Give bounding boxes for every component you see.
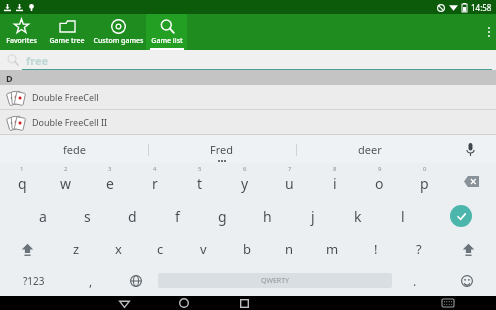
button[interactable]: g xyxy=(200,199,245,233)
staticText: y xyxy=(241,174,249,193)
button[interactable]: Enter xyxy=(425,199,496,233)
staticText: deer xyxy=(358,142,382,157)
button[interactable]: z xyxy=(55,233,97,265)
staticText: t xyxy=(197,174,203,193)
button[interactable]: d xyxy=(110,199,155,233)
staticText: r xyxy=(152,174,158,193)
staticText: 8 xyxy=(333,165,337,173)
button[interactable]: Game tree xyxy=(43,14,90,50)
staticText: 14:58 xyxy=(471,2,492,13)
button[interactable]: n xyxy=(268,233,311,265)
staticText: d xyxy=(128,207,137,226)
staticText: D xyxy=(6,72,13,84)
staticText: 1 xyxy=(20,165,24,173)
staticText: h xyxy=(263,207,272,226)
button[interactable]: s xyxy=(65,199,110,233)
staticText: g xyxy=(218,207,227,226)
button[interactable]: 1 xyxy=(0,163,44,199)
button[interactable]: 5 xyxy=(177,163,222,199)
button[interactable]: Voice input xyxy=(444,136,496,163)
staticText: p xyxy=(420,174,429,193)
button[interactable]: QWERTY xyxy=(158,273,392,288)
staticText: x xyxy=(115,240,122,258)
button[interactable]: More options xyxy=(488,27,490,37)
staticText: ! xyxy=(374,240,378,258)
staticText: e xyxy=(106,174,114,193)
button[interactable]: Shift xyxy=(440,233,496,265)
staticText: , xyxy=(89,273,93,289)
staticText: QWERTY xyxy=(261,276,290,286)
button[interactable]: ?123 xyxy=(0,265,68,296)
staticText: 2 xyxy=(64,165,68,173)
staticText: Game tree xyxy=(49,36,85,46)
staticText: Fred xyxy=(210,142,234,157)
staticText: 5 xyxy=(198,165,202,173)
button[interactable]: Backspace xyxy=(447,163,496,199)
staticText: fede xyxy=(63,142,86,157)
button[interactable]: Home xyxy=(154,296,214,310)
button[interactable]: deer xyxy=(296,136,444,163)
staticText: n xyxy=(285,240,294,258)
staticText: 4 xyxy=(153,165,157,173)
button[interactable]: h xyxy=(245,199,290,233)
button[interactable]: Double FreeCell II xyxy=(0,110,496,134)
button[interactable]: x xyxy=(97,233,139,265)
button[interactable]: Hide keyboard xyxy=(418,296,478,310)
button[interactable]: Double FreeCell xyxy=(0,85,496,109)
staticText: u xyxy=(285,174,294,193)
staticText: m xyxy=(326,240,339,258)
button[interactable]: Custom games xyxy=(90,14,146,50)
staticText: 0 xyxy=(423,165,427,173)
button[interactable]: Fred xyxy=(148,136,296,163)
staticText: c xyxy=(157,240,164,258)
button[interactable]: 0 xyxy=(402,163,447,199)
button[interactable]: c xyxy=(139,233,182,265)
staticText: k xyxy=(354,207,362,226)
button[interactable]: v xyxy=(182,233,225,265)
button[interactable]: Emoji xyxy=(437,265,496,296)
button[interactable]: 3 xyxy=(88,163,132,199)
button[interactable]: Shift xyxy=(0,233,55,265)
staticText: ?123 xyxy=(23,274,45,288)
button[interactable]: fede xyxy=(0,136,148,163)
button[interactable]: Game list xyxy=(146,14,187,50)
button[interactable]: Change language xyxy=(113,265,158,296)
button[interactable]: k xyxy=(335,199,380,233)
staticText: 9 xyxy=(378,165,382,173)
button[interactable]: 2 xyxy=(44,163,88,199)
staticText: 7 xyxy=(288,165,292,173)
staticText: 3 xyxy=(108,165,112,173)
button[interactable]: f xyxy=(155,199,200,233)
button[interactable]: , xyxy=(68,265,113,296)
staticText: v xyxy=(200,240,207,258)
button[interactable]: 7 xyxy=(267,163,312,199)
button[interactable]: Back xyxy=(94,296,154,310)
staticText: ? xyxy=(416,240,422,258)
staticText: w xyxy=(60,174,72,193)
button[interactable]: Favorites xyxy=(0,14,43,50)
button[interactable]: ! xyxy=(354,233,397,265)
button[interactable]: l xyxy=(380,199,425,233)
button[interactable]: 6 xyxy=(222,163,267,199)
staticText: . xyxy=(413,273,417,289)
button[interactable]: b xyxy=(225,233,268,265)
button[interactable]: ? xyxy=(397,233,440,265)
staticText: Custom games xyxy=(93,36,144,46)
staticText: o xyxy=(375,174,384,193)
button[interactable]: m xyxy=(311,233,354,265)
button[interactable]: 4 xyxy=(132,163,177,199)
staticText: i xyxy=(333,174,337,193)
button[interactable]: 8 xyxy=(312,163,357,199)
staticText: q xyxy=(18,174,27,193)
staticText: s xyxy=(84,207,91,226)
button[interactable]: . xyxy=(392,265,437,296)
button[interactable]: a xyxy=(21,199,65,233)
staticText: j xyxy=(311,207,315,226)
staticText: z xyxy=(73,240,80,258)
button[interactable]: j xyxy=(290,199,335,233)
button[interactable]: 9 xyxy=(357,163,402,199)
staticText: Double FreeCell II xyxy=(32,116,108,128)
staticText: f xyxy=(175,207,180,226)
staticText: Double FreeCell xyxy=(32,91,99,103)
button[interactable]: Recent apps xyxy=(214,296,274,310)
